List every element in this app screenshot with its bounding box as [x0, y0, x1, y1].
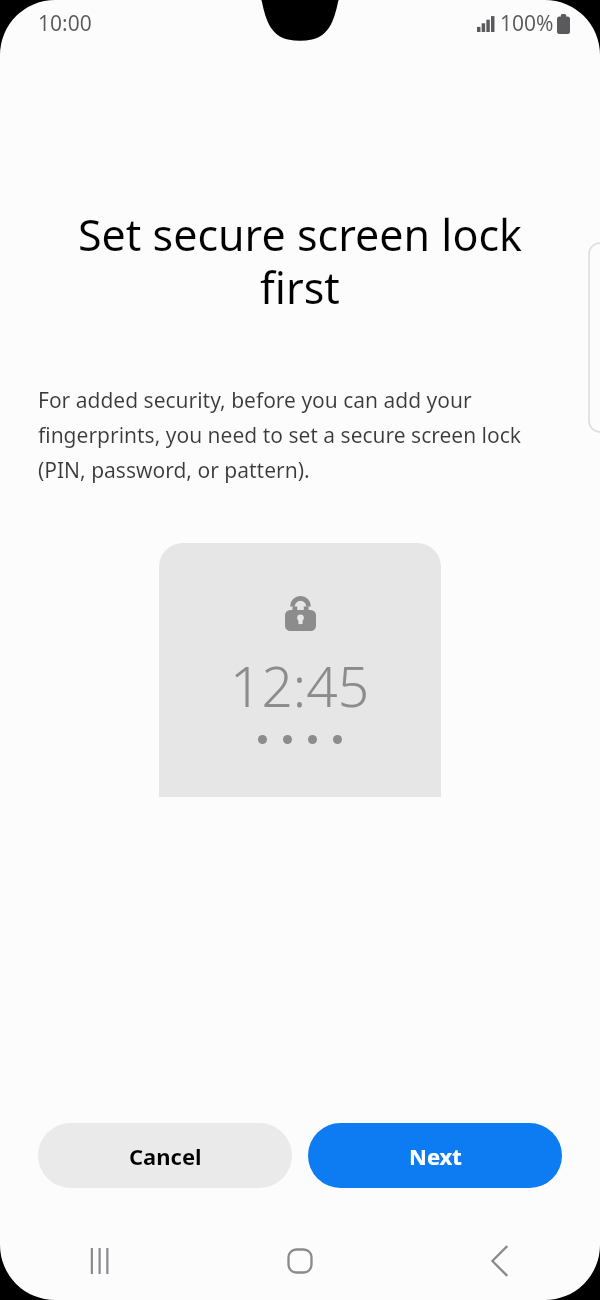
- staticText: Next: [409, 1141, 462, 1171]
- button[interactable]: Next: [308, 1123, 562, 1188]
- button[interactable]: Recent apps: [0, 1230, 200, 1292]
- staticText: 12:45: [230, 648, 370, 723]
- staticText: Cancel: [129, 1141, 202, 1171]
- button[interactable]: Home: [200, 1230, 400, 1292]
- button[interactable]: Cancel: [38, 1123, 292, 1188]
- staticText: For added security, before you can add y…: [38, 386, 552, 485]
- button[interactable]: Back: [400, 1230, 600, 1292]
- staticText: 10:00: [38, 9, 92, 38]
- staticText: Set secure screen lock first: [48, 205, 552, 316]
- staticText: 100%: [500, 9, 554, 38]
